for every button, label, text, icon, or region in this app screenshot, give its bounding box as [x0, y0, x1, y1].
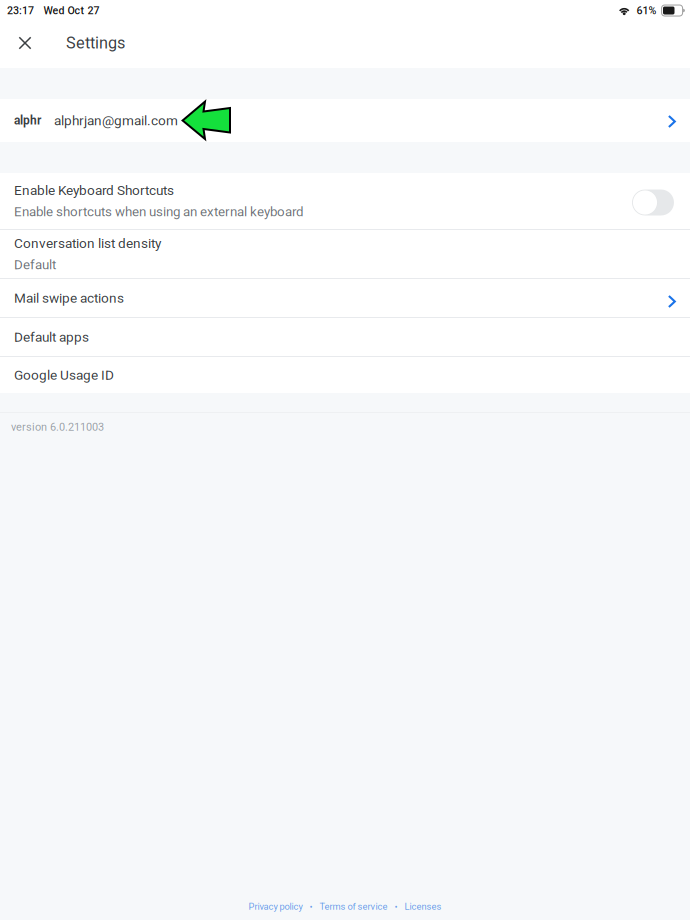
staticText: Settings [66, 33, 125, 53]
staticText: 23:17 [7, 4, 34, 17]
button[interactable]: Licenses [404, 901, 441, 912]
staticText: version 6.0.211003 [11, 421, 104, 433]
button[interactable]: Mail swipe actions [0, 279, 690, 317]
staticText: Privacy policy [248, 901, 302, 912]
staticText: • [394, 901, 397, 912]
staticText: Default [14, 257, 56, 272]
staticText: alphrjan@gmail.com [54, 112, 178, 128]
button[interactable]: Terms of service [319, 901, 387, 912]
staticText: Default apps [14, 329, 89, 345]
button[interactable]: alphr [0, 99, 690, 142]
staticText: Terms of service [319, 901, 387, 912]
staticText: • [309, 901, 312, 912]
button[interactable]: Close [5, 23, 45, 63]
button[interactable]: Privacy policy [248, 901, 302, 912]
staticText: alphr [14, 113, 41, 128]
staticText: Wed Oct 27 [43, 4, 99, 17]
staticText: 61% [637, 4, 657, 17]
button[interactable]: Google Usage ID [0, 357, 690, 393]
staticText: Licenses [404, 901, 441, 912]
button[interactable]: Enable Keyboard Shortcuts [0, 173, 690, 229]
button[interactable]: Default apps [0, 318, 690, 356]
staticText: Enable shortcuts when using an external … [14, 204, 304, 219]
staticText: Conversation list density [14, 235, 161, 251]
staticText: Google Usage ID [14, 367, 114, 383]
staticText: Enable Keyboard Shortcuts [14, 182, 174, 198]
button[interactable]: Conversation list density [0, 230, 690, 278]
staticText: Mail swipe actions [14, 290, 124, 306]
